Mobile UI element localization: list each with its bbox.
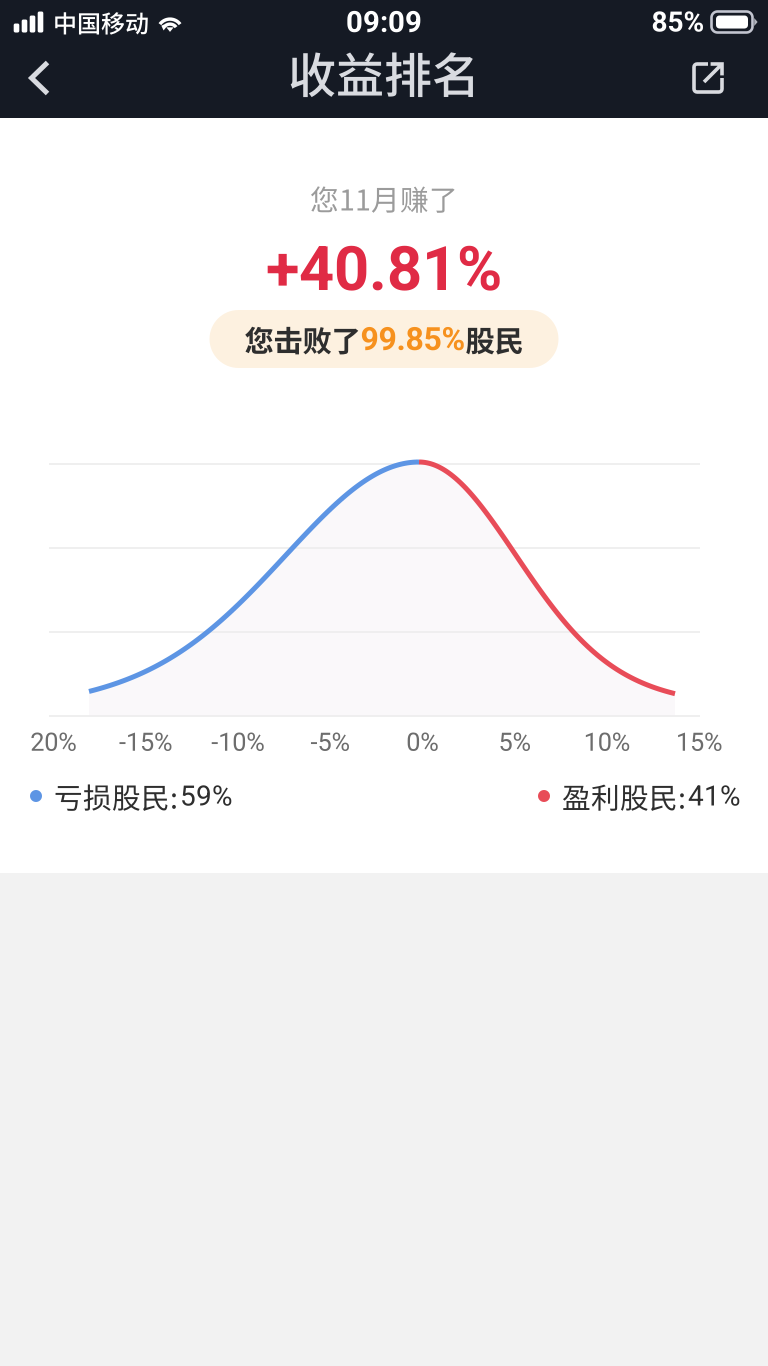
staticText: 盈利股民: bbox=[562, 775, 686, 817]
staticText: 亏损股民: bbox=[54, 775, 178, 817]
staticText: 59% bbox=[180, 780, 233, 812]
staticText: 中国移动 bbox=[53, 5, 149, 39]
staticText: -15% bbox=[119, 727, 173, 757]
staticText: 10% bbox=[584, 727, 631, 757]
staticText: 0% bbox=[406, 727, 439, 757]
staticText: 41% bbox=[688, 780, 741, 812]
staticText: 您11月赚了 bbox=[310, 177, 458, 219]
staticText: 5% bbox=[498, 727, 531, 757]
staticText: 20% bbox=[30, 727, 77, 757]
staticText: 85% bbox=[651, 6, 704, 38]
button[interactable]: Back bbox=[0, 44, 70, 118]
staticText: 99.85% bbox=[360, 320, 465, 358]
staticText: +40.81% bbox=[266, 233, 502, 305]
staticText: -5% bbox=[310, 727, 350, 757]
staticText: -10% bbox=[211, 727, 265, 757]
staticText: 股民 bbox=[465, 318, 523, 360]
staticText: 收益排名 bbox=[288, 37, 480, 107]
button[interactable]: Share bbox=[698, 44, 768, 118]
staticText: 您击败了 bbox=[244, 318, 360, 360]
staticText: 15% bbox=[676, 727, 723, 757]
staticText: 09:09 bbox=[346, 5, 422, 39]
